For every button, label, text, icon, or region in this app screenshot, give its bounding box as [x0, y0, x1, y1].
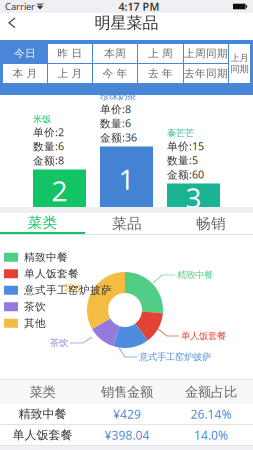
staticText: 3	[185, 179, 201, 216]
staticText: 茶饮	[50, 337, 68, 349]
staticText: 数量:5	[167, 153, 198, 167]
staticText: 今 年	[102, 67, 127, 80]
button[interactable]: 上周同期	[184, 44, 228, 63]
button[interactable]: 菜品	[85, 213, 169, 234]
staticText: ¥398.04	[104, 427, 149, 443]
staticText: 上 月	[57, 67, 82, 80]
button[interactable]: 今日	[3, 44, 47, 63]
staticText: 金额占比	[185, 384, 237, 400]
staticText: Carrier	[5, 0, 35, 13]
button[interactable]: 去 年	[138, 64, 183, 83]
button[interactable]: 上月	[229, 44, 250, 83]
staticText: 金额:36	[100, 130, 137, 144]
staticText: 泰芒芒	[167, 127, 194, 139]
staticText: 上月	[230, 52, 248, 63]
staticText: 精致中餐	[18, 407, 66, 421]
staticText: 单价:8	[100, 102, 131, 116]
staticText: 同期	[230, 63, 248, 75]
staticText: 其他	[24, 317, 46, 330]
staticText: 4:17 PM	[118, 0, 159, 14]
staticText: 明星菜品	[94, 13, 158, 33]
staticText: ¥429	[113, 406, 141, 422]
staticText: 菜品	[112, 214, 142, 232]
staticText: 单人饭套餐	[181, 330, 226, 342]
staticText: 菜类	[27, 213, 57, 231]
button[interactable]: 菜类	[0, 213, 85, 234]
staticText: 畅销	[196, 214, 226, 232]
staticText: 今日	[14, 47, 36, 60]
staticText: 数量:6	[33, 139, 64, 153]
button[interactable]: 去年同期	[184, 64, 228, 83]
staticText: 意式手工窑炉披萨	[24, 284, 112, 297]
button[interactable]: 昨 日	[48, 44, 92, 63]
staticText: 昨 日	[57, 47, 82, 60]
button[interactable]: 畅销	[169, 213, 253, 234]
staticText: 单人饭套餐	[24, 267, 79, 280]
button[interactable]: 本周	[93, 44, 137, 63]
staticText: 其他	[64, 282, 82, 294]
staticText: 去年同期	[184, 67, 228, 80]
staticText: 本周	[104, 47, 126, 60]
staticText: 数量:6	[100, 116, 131, 130]
staticText: 茶饮	[24, 300, 46, 313]
staticText: 意式手工窑炉披萨	[139, 351, 211, 363]
button[interactable]: 上 月	[48, 64, 92, 83]
staticText: 金额:8	[33, 153, 64, 167]
staticText: 珍珠奶茶	[100, 90, 136, 102]
staticText: 去 年	[148, 67, 173, 80]
staticText: 单价:15	[167, 139, 204, 153]
staticText: 菜类	[29, 384, 55, 400]
button[interactable]: 今 年	[93, 64, 137, 83]
staticText: 26.14%	[190, 406, 231, 422]
staticText: 本 月	[12, 67, 37, 80]
staticText: 米饭	[33, 113, 51, 125]
staticText: 上 周	[148, 47, 173, 60]
staticText: 单价:2	[33, 125, 64, 139]
staticText: 上周同期	[184, 47, 228, 60]
button[interactable]: 本 月	[3, 64, 47, 83]
staticText: 14.0%	[194, 427, 228, 443]
button[interactable]: 上 周	[138, 44, 183, 63]
staticText: 1	[118, 160, 134, 198]
staticText: 金额:60	[167, 167, 204, 181]
staticText: 销售金额	[101, 384, 153, 400]
staticText: 2	[51, 172, 67, 209]
button[interactable]: Back	[0, 14, 25, 31]
staticText: 精致中餐	[177, 269, 213, 281]
staticText: 精致中餐	[24, 251, 68, 264]
staticText: 单人饭套餐	[12, 428, 72, 442]
